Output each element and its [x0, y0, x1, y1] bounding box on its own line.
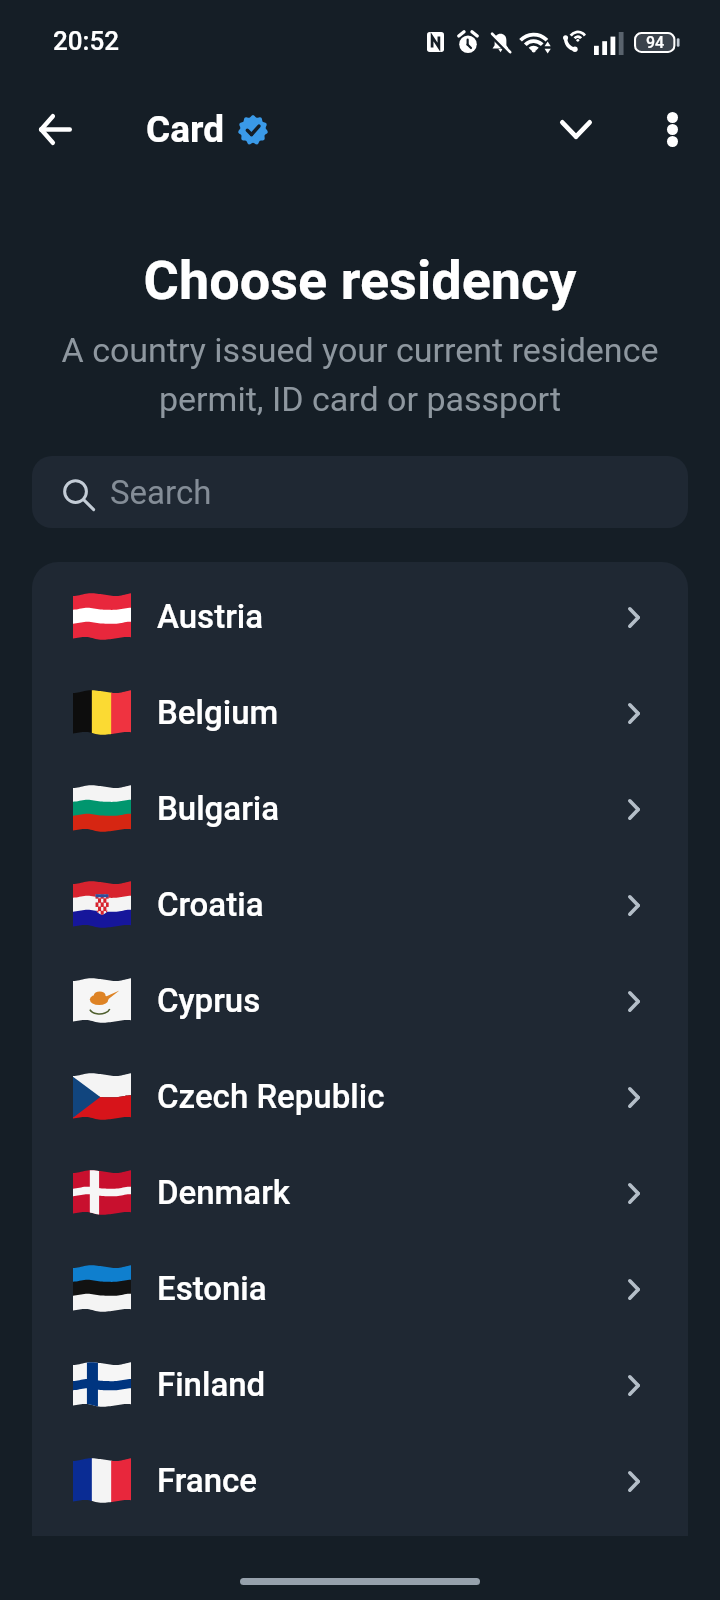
button[interactable]: More options [642, 99, 702, 159]
button[interactable]: Denmark [32, 1144, 688, 1240]
staticText: A country issued your current residence … [0, 330, 720, 419]
button[interactable]: Estonia [32, 1240, 688, 1336]
button[interactable]: Belgium [32, 664, 688, 760]
staticText: Choose residency [0, 249, 720, 312]
staticText: France [157, 1461, 258, 1500]
button[interactable]: Cyprus [32, 952, 688, 1048]
staticText: Czech Republic [157, 1077, 385, 1116]
button[interactable]: Search [32, 456, 688, 528]
staticText: Search [110, 473, 212, 512]
staticText: 94 [646, 33, 665, 52]
staticText: Bulgaria [157, 789, 280, 828]
staticText: Denmark [157, 1173, 291, 1212]
staticText: Croatia [157, 885, 264, 924]
staticText: Card [146, 108, 225, 151]
staticText: 20:52 [53, 26, 120, 56]
staticText: Austria [157, 597, 264, 636]
staticText: Cyprus [157, 981, 261, 1020]
staticText: Belgium [157, 693, 279, 732]
button[interactable]: Bulgaria [32, 760, 688, 856]
button[interactable]: Finland [32, 1336, 688, 1432]
button[interactable]: France [32, 1432, 688, 1528]
button[interactable]: Expand [546, 99, 606, 159]
button[interactable]: Austria [32, 568, 688, 664]
button[interactable]: Croatia [32, 856, 688, 952]
button[interactable]: Back [23, 97, 87, 161]
button[interactable]: Czech Republic [32, 1048, 688, 1144]
staticText: Finland [157, 1365, 266, 1404]
staticText: Estonia [157, 1269, 267, 1308]
